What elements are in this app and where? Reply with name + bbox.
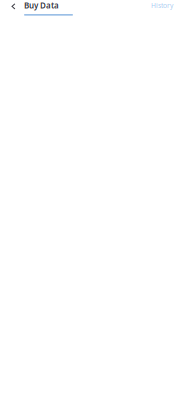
button[interactable]: History	[151, 0, 173, 10]
staticText: History	[151, 1, 173, 10]
staticText: Buy Data	[24, 0, 59, 11]
button[interactable]: Back	[8, 0, 19, 12]
